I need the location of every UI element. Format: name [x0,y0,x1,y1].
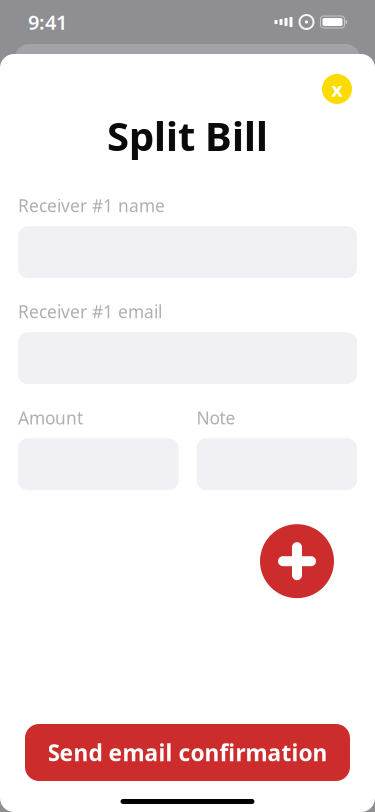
staticText: Send email confirmation [47,737,327,767]
staticText: Receiver #1 name [18,194,165,217]
button[interactable]: Add receiver [260,524,334,598]
staticText: Note [196,406,235,429]
staticText: x [331,76,343,102]
button[interactable]: Send email confirmation [25,724,350,781]
staticText: Amount [18,406,83,429]
button[interactable]: Close [322,74,352,104]
staticText: Receiver #1 email [18,300,162,323]
staticText: Split Bill [107,109,268,162]
staticText: 9:41 [28,9,67,35]
